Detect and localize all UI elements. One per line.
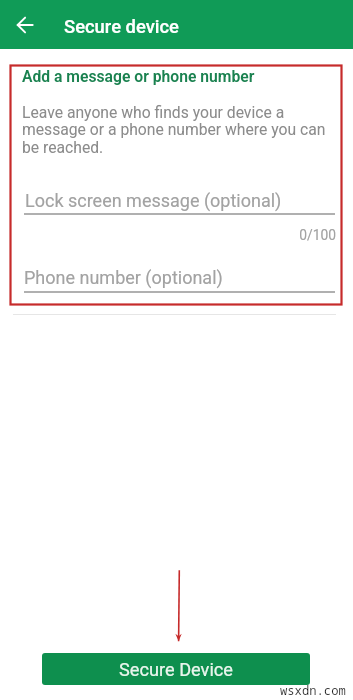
button[interactable]: Phone number (optional) (24, 262, 335, 292)
staticText: Phone number (optional) (24, 267, 223, 288)
staticText: Leave anyone who finds your device a mes… (22, 103, 326, 157)
button[interactable]: Back (6, 5, 44, 43)
staticText: Add a message or phone number (22, 67, 255, 85)
staticText: Secure Device (119, 659, 234, 680)
staticText: 0/100 (0, 227, 336, 243)
button[interactable]: Secure Device (42, 653, 310, 685)
staticText: wsxdn.com (280, 682, 346, 699)
staticText: Lock screen message (optional) (25, 190, 282, 211)
button[interactable]: Lock screen message (optional) (24, 185, 335, 215)
staticText: Secure device (64, 16, 179, 38)
